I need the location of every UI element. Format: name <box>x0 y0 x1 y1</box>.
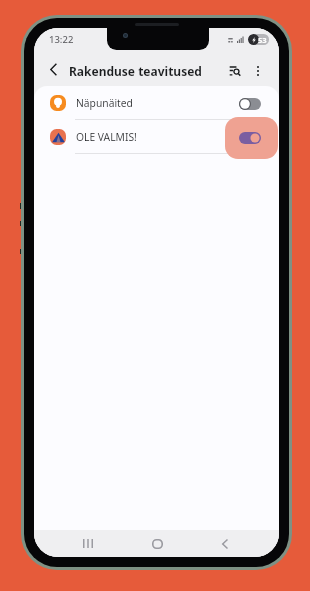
button[interactable]: Toggle OLE VALMIS! <box>225 117 278 159</box>
button[interactable]: Home <box>142 530 172 557</box>
staticText: 13:22 <box>49 33 74 46</box>
staticText: OLE VALMIS! <box>76 130 227 144</box>
button[interactable]: Search <box>223 56 247 86</box>
button[interactable]: More options <box>247 56 269 86</box>
staticText: Näpunäited <box>76 96 227 110</box>
button[interactable]: Back <box>34 56 67 86</box>
staticText: 53 <box>258 35 267 45</box>
button[interactable]: Näpunäited <box>34 86 279 120</box>
button[interactable]: Toggle Näpunäited <box>225 86 278 125</box>
button[interactable]: Recents <box>73 530 103 557</box>
staticText: Rakenduse teavitused <box>69 63 223 79</box>
button[interactable]: Back <box>210 530 240 557</box>
button[interactable]: OLE VALMIS! <box>34 120 279 154</box>
